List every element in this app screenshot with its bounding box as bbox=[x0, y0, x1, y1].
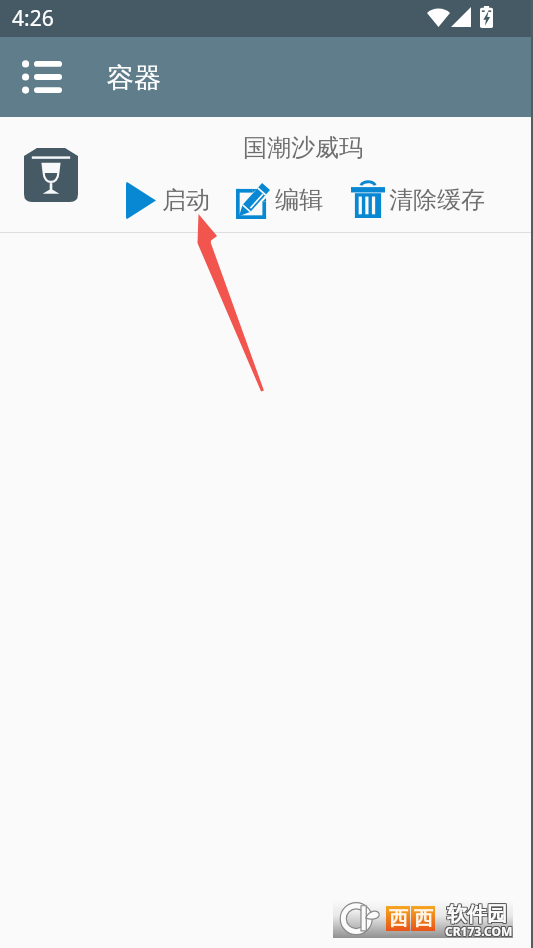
staticText: 软件园 bbox=[448, 903, 508, 928]
staticText: CR173.COM bbox=[445, 924, 513, 940]
staticText: 软件园 bbox=[446, 902, 506, 927]
staticText: 软件园 bbox=[448, 901, 508, 926]
staticText: CR173.COM bbox=[446, 923, 514, 939]
staticText: CR173.COM bbox=[444, 922, 512, 938]
staticText: CR173.COM bbox=[445, 923, 513, 939]
staticText: 清除缓存 bbox=[389, 185, 485, 215]
staticText: 软件园 bbox=[447, 903, 507, 928]
staticText: 软件园 bbox=[448, 902, 508, 927]
staticText: 西 bbox=[414, 907, 433, 931]
staticText: 容器 bbox=[107, 61, 161, 95]
staticText: CR173.COM bbox=[445, 922, 513, 938]
staticText: 西 bbox=[389, 907, 408, 931]
staticText: 软件园 bbox=[447, 902, 507, 927]
staticText: 软件园 bbox=[446, 901, 506, 926]
staticText: CR173.COM bbox=[446, 922, 514, 938]
button[interactable]: Menu bbox=[10, 45, 74, 109]
staticText: 软件园 bbox=[446, 903, 506, 928]
staticText: 启动 bbox=[162, 185, 210, 215]
staticText: CR173.COM bbox=[446, 924, 514, 940]
staticText: 软件园 bbox=[447, 901, 507, 926]
staticText: 编辑 bbox=[275, 185, 323, 215]
staticText: CR173.COM bbox=[444, 923, 512, 939]
button[interactable]: 启动 bbox=[126, 182, 210, 219]
button[interactable]: 编辑 bbox=[236, 181, 323, 219]
staticText: 国潮沙威玛 bbox=[243, 133, 363, 163]
button[interactable]: 清除缓存 bbox=[351, 181, 485, 218]
staticText: 4:26 bbox=[12, 4, 54, 33]
staticText: CR173.COM bbox=[444, 924, 512, 940]
